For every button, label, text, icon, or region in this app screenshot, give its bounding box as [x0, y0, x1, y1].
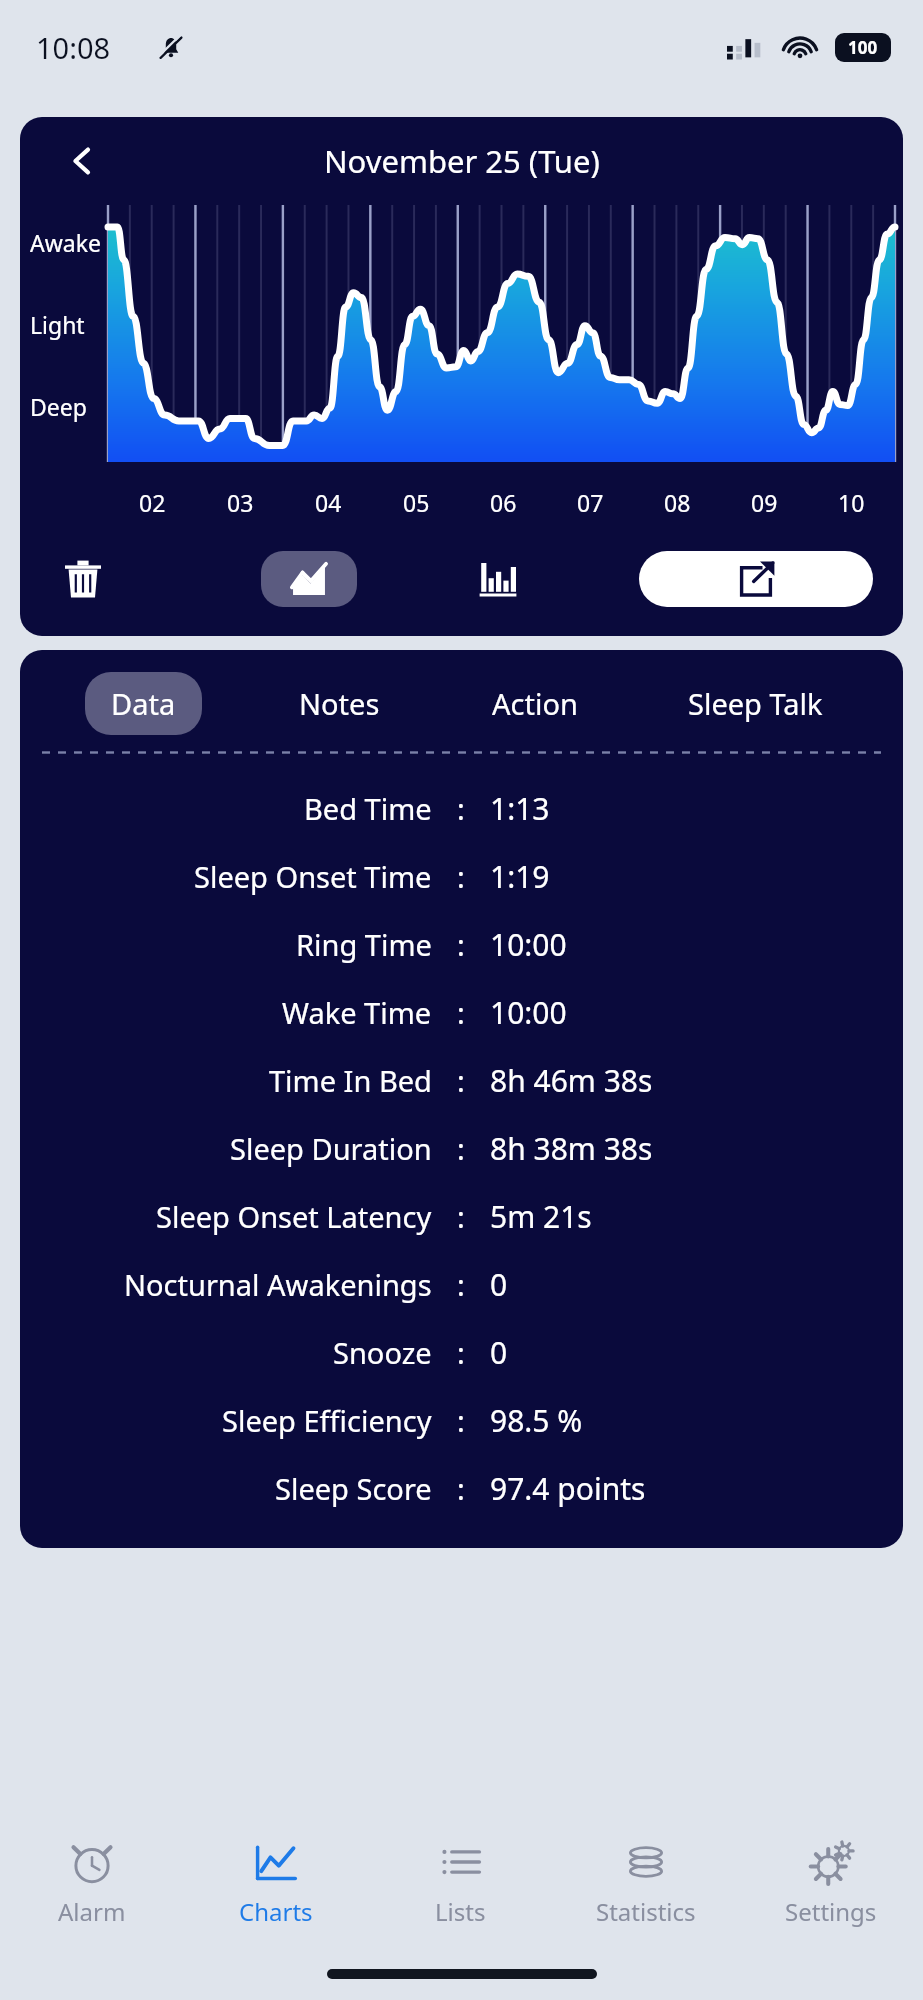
staticText: : — [457, 789, 465, 828]
button[interactable]: Nocturnal Awakenings — [20, 1250, 903, 1318]
staticText: Ring Time — [296, 925, 432, 964]
button[interactable]: Alarm — [0, 1818, 184, 1948]
staticText: 98.5 % — [490, 1400, 583, 1441]
staticText: 10:00 — [490, 924, 567, 965]
button[interactable]: Wake Time — [20, 978, 903, 1046]
button[interactable]: Share — [639, 551, 873, 607]
staticText: 09 — [751, 487, 778, 518]
button[interactable]: Delete — [50, 546, 116, 612]
button[interactable]: Sleep Duration — [20, 1114, 903, 1182]
staticText: Bed Time — [304, 789, 432, 828]
staticText: : — [457, 1061, 465, 1100]
staticText: : — [457, 1265, 465, 1304]
staticText: 02 — [139, 487, 166, 518]
staticText: : — [457, 993, 465, 1032]
button[interactable]: Notes — [273, 672, 406, 735]
staticText: 5m 21s — [490, 1196, 592, 1237]
button[interactable]: Bar chart — [465, 546, 531, 612]
button[interactable]: Snooze — [20, 1318, 903, 1386]
button[interactable]: Charts — [184, 1818, 368, 1948]
staticText: : — [457, 1333, 465, 1372]
staticText: 08 — [664, 487, 691, 518]
staticText: 8h 38m 38s — [490, 1128, 653, 1169]
staticText: Sleep Onset Latency — [156, 1197, 432, 1236]
staticText: 0 — [490, 1264, 508, 1305]
staticText: 06 — [490, 487, 517, 518]
staticText: Sleep Score — [275, 1469, 432, 1508]
staticText: Lists — [435, 1895, 486, 1928]
staticText: 97.4 points — [490, 1468, 646, 1509]
staticText: 07 — [577, 487, 604, 518]
button[interactable]: Ring Time — [20, 910, 903, 978]
staticText: Data — [111, 684, 176, 723]
staticText: Snooze — [333, 1333, 432, 1372]
staticText: 04 — [315, 487, 342, 518]
button[interactable]: Sleep Score — [20, 1454, 903, 1522]
staticText: : — [457, 1469, 465, 1508]
staticText: Statistics — [596, 1895, 696, 1928]
button[interactable]: Sleep Talk — [662, 672, 849, 735]
staticText: Deep — [30, 391, 87, 422]
staticText: Action — [492, 684, 578, 723]
button[interactable]: Bed Time — [20, 774, 903, 842]
staticText: Wake Time — [282, 993, 432, 1032]
staticText: Notes — [299, 684, 380, 723]
staticText: Sleep Efficiency — [222, 1401, 432, 1440]
button[interactable]: Settings — [738, 1818, 923, 1948]
staticText: : — [457, 1197, 465, 1236]
staticText: 10 — [838, 487, 865, 518]
button[interactable]: Line chart — [261, 551, 357, 607]
staticText: Settings — [785, 1895, 877, 1928]
staticText: Time In Bed — [269, 1061, 432, 1100]
staticText: Sleep Talk — [688, 684, 823, 723]
staticText: Awake — [30, 227, 101, 258]
button[interactable]: Lists — [368, 1818, 553, 1948]
button[interactable]: Action — [466, 672, 604, 735]
staticText: 1:13 — [490, 788, 550, 829]
button[interactable]: Time In Bed — [20, 1046, 903, 1114]
staticText: 8h 46m 38s — [490, 1060, 653, 1101]
staticText: : — [457, 925, 465, 964]
staticText: Alarm — [58, 1895, 126, 1928]
button[interactable]: Statistics — [553, 1818, 738, 1948]
button[interactable]: Sleep Efficiency — [20, 1386, 903, 1454]
button[interactable]: Data — [85, 672, 202, 735]
staticText: Light — [30, 309, 85, 340]
staticText: 10:00 — [490, 992, 567, 1033]
staticText: Sleep Duration — [230, 1129, 432, 1168]
staticText: 1:19 — [490, 856, 550, 897]
staticText: : — [457, 857, 465, 896]
staticText: 0 — [490, 1332, 508, 1373]
staticText: 100 — [848, 36, 878, 59]
staticText: 05 — [403, 487, 430, 518]
staticText: Nocturnal Awakenings — [124, 1265, 432, 1304]
staticText: Charts — [239, 1895, 313, 1928]
staticText: 10:08 — [36, 28, 111, 67]
staticText: November 25 (Tue) — [324, 140, 600, 182]
button[interactable]: Sleep Onset Latency — [20, 1182, 903, 1250]
staticText: : — [457, 1129, 465, 1168]
staticText: 03 — [227, 487, 254, 518]
button[interactable]: Sleep Onset Time — [20, 842, 903, 910]
button[interactable]: Back — [56, 135, 108, 187]
staticText: Sleep Onset Time — [194, 857, 432, 896]
staticText: : — [457, 1401, 465, 1440]
